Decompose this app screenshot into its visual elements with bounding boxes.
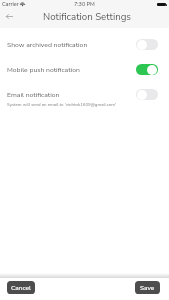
staticText: Mobile push notification <box>7 65 80 74</box>
staticText: 7:30 PM <box>74 0 95 8</box>
button[interactable]: Show archived notification <box>0 32 169 57</box>
button[interactable]: Save <box>135 281 160 294</box>
button[interactable]: Email notification <box>0 82 169 107</box>
staticText: Carrier <box>2 0 19 8</box>
staticText: Notification Settings <box>43 10 132 23</box>
staticText: Email notification <box>7 90 60 99</box>
button[interactable]: Cancel <box>7 281 35 294</box>
staticText: System will send an email to 'vinhtnk160… <box>7 102 116 108</box>
staticText: Save <box>140 283 155 292</box>
button[interactable]: Back <box>2 9 17 24</box>
staticText: Cancel <box>11 283 32 292</box>
button[interactable]: Mobile push notification <box>0 57 169 82</box>
staticText: Show archived notification <box>7 40 88 49</box>
